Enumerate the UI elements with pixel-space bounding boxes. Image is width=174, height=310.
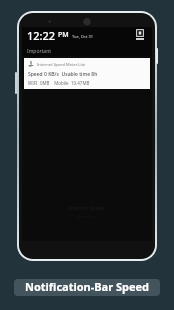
staticText: PM: [58, 30, 69, 40]
other: Power button: [156, 48, 158, 64]
staticText: WIFI 0MB Mobile 10.47MB: [28, 80, 90, 86]
staticText: Speed 0 KB/s Usable time 8h: [28, 71, 98, 78]
staticText: Tue, Oct 31: [72, 34, 93, 39]
staticText: 12:22: [27, 28, 56, 43]
staticText: Internet Speed Meter Lite: [37, 62, 86, 67]
button[interactable]: Internet Speed Meter Lite: [24, 58, 150, 89]
staticText: Notification-Bar Speed Show: [14, 279, 160, 296]
staticText: Important: [27, 48, 52, 55]
other: Volume button: [15, 72, 17, 94]
button[interactable]: Settings: [133, 27, 147, 43]
staticText: Internet Speed: [69, 205, 105, 212]
